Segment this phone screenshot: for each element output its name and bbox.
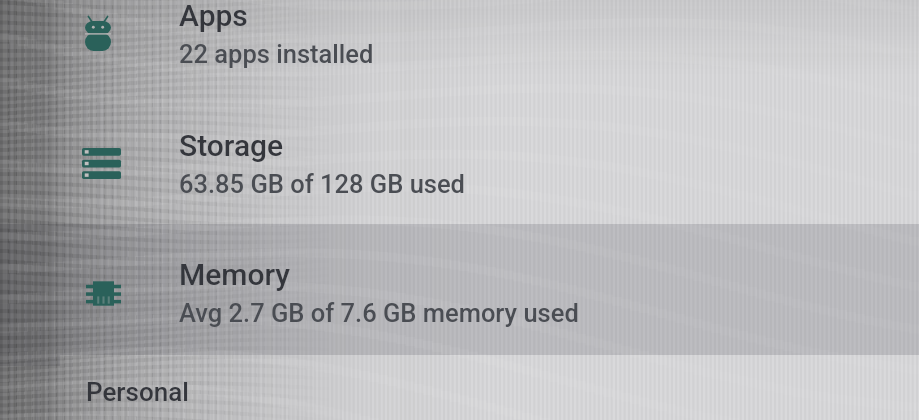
button[interactable]: Memory: [0, 241, 919, 371]
staticText: 22 apps installed: [179, 39, 374, 69]
staticText: 63.85 GB of 128 GB used: [179, 169, 465, 199]
button[interactable]: Storage: [0, 112, 919, 242]
staticText: Apps: [179, 0, 248, 33]
button[interactable]: Apps: [0, 0, 919, 112]
staticText: Memory: [179, 257, 291, 292]
staticText: Avg 2.7 GB of 7.6 GB memory used: [179, 298, 579, 328]
staticText: Personal: [86, 377, 189, 407]
staticText: Storage: [179, 128, 284, 163]
other: Apps: [85, 15, 111, 51]
other: Storage: [82, 148, 121, 179]
other: Memory: [86, 279, 121, 308]
